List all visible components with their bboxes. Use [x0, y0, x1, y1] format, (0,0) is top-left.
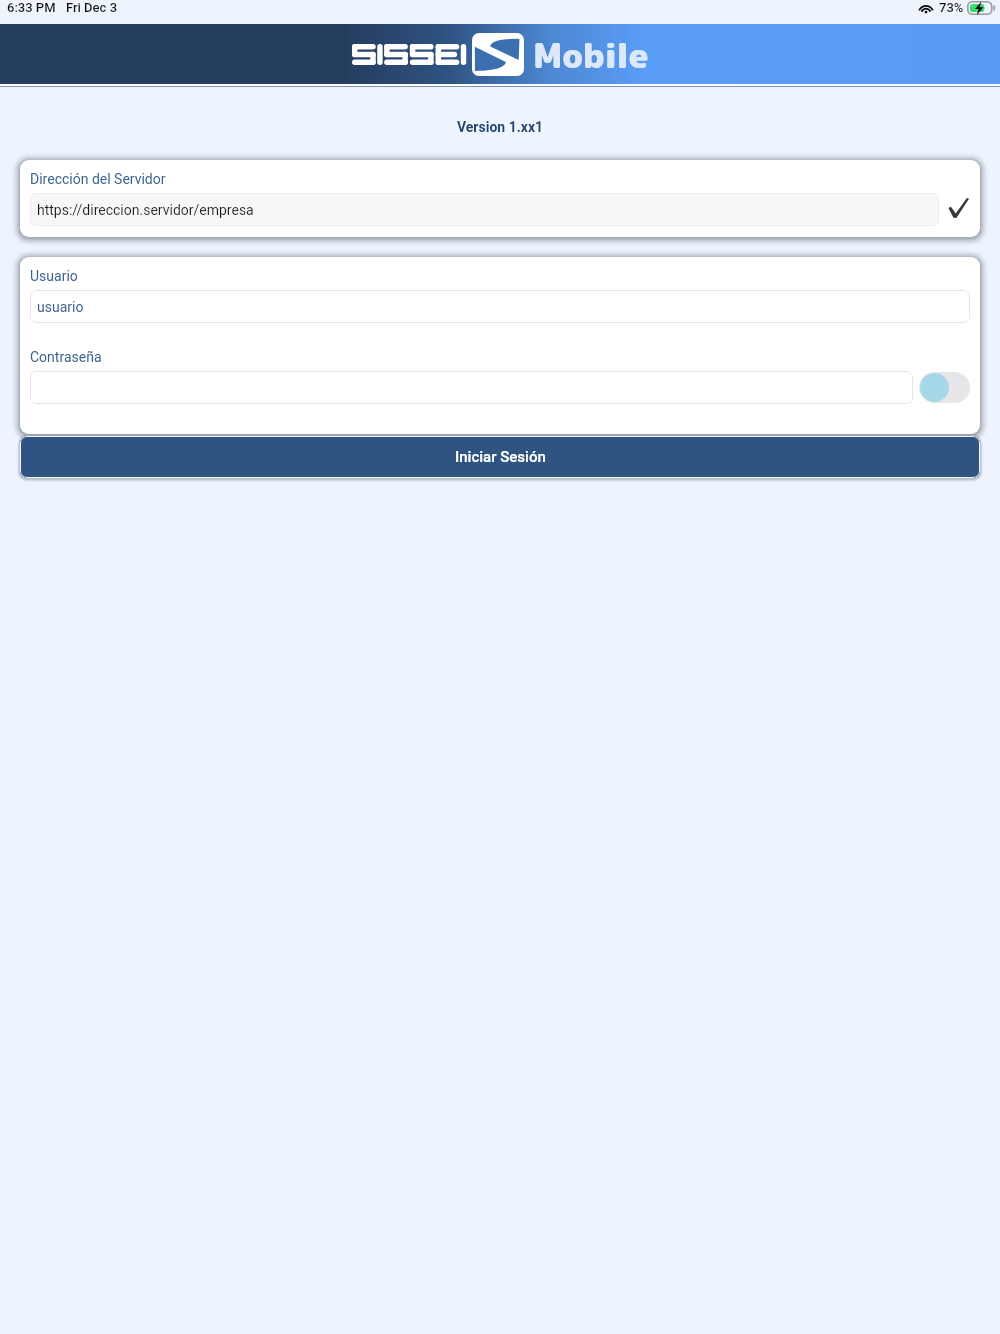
- staticText: Mobile: [533, 31, 649, 78]
- staticText: Dirección del Servidor: [30, 171, 166, 187]
- staticText: Fri Dec 3: [66, 0, 118, 15]
- staticText: Contraseña: [30, 349, 102, 365]
- staticText: 6:33 PM: [7, 0, 56, 15]
- staticText: Version 1.xx1: [0, 119, 1000, 135]
- staticText: usuario: [37, 299, 84, 315]
- button[interactable]: Mostrar contraseña: [919, 372, 970, 403]
- staticText: 73%: [939, 0, 964, 15]
- button[interactable]: Confirmar dirección: [939, 195, 969, 225]
- staticText: https://direccion.servidor/empresa: [37, 202, 254, 218]
- staticText: Usuario: [30, 268, 78, 284]
- staticText: Iniciar Sesión: [455, 448, 546, 466]
- button[interactable]: Iniciar Sesión: [20, 436, 980, 478]
